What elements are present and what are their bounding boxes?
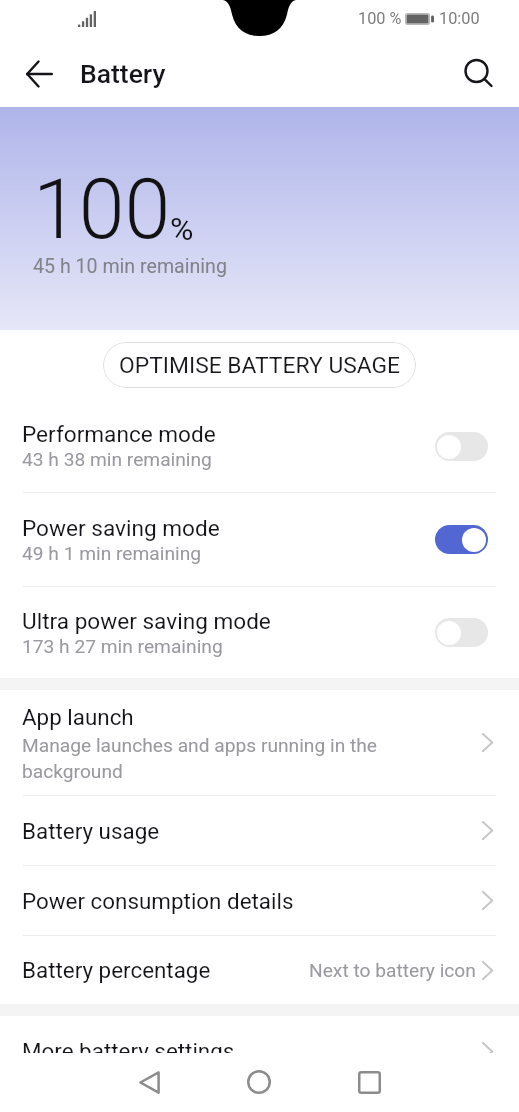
button[interactable]: Toggle <box>435 618 488 647</box>
staticText: Next to battery icon <box>309 959 476 982</box>
staticText: Performance mode <box>22 421 216 447</box>
button[interactable]: Power saving mode <box>0 493 519 586</box>
button[interactable]: Battery percentage <box>0 936 519 1004</box>
button[interactable]: Search <box>458 53 499 94</box>
staticText: 10:00 <box>439 9 480 28</box>
staticText: More battery settings <box>22 1038 235 1064</box>
staticText: 43 h 38 min remaining <box>22 448 212 471</box>
staticText: 173 h 27 min remaining <box>22 635 223 658</box>
button[interactable]: Recents <box>343 1056 395 1108</box>
staticText: 45 h 10 min remaining <box>33 255 227 278</box>
staticText: OPTIMISE BATTERY USAGE <box>119 352 401 379</box>
button[interactable]: App launch <box>0 690 519 795</box>
button[interactable]: Battery usage <box>0 796 519 865</box>
staticText: 49 h 1 min remaining <box>22 542 202 565</box>
staticText: Battery <box>80 58 166 89</box>
button[interactable]: Home <box>233 1056 285 1108</box>
staticText: Battery percentage <box>22 957 211 983</box>
staticText: Manage launches and apps running in the … <box>22 734 394 782</box>
button[interactable]: Power consumption details <box>0 866 519 935</box>
button[interactable]: Toggle <box>435 525 488 554</box>
button[interactable]: Back <box>19 53 60 94</box>
button[interactable]: Ultra power saving mode <box>0 587 519 678</box>
button[interactable]: More battery settings <box>0 1016 519 1086</box>
button[interactable]: Performance mode <box>0 400 519 492</box>
staticText: 100 % <box>358 9 402 28</box>
staticText: 100 <box>33 161 171 258</box>
staticText: Power consumption details <box>22 888 294 914</box>
button[interactable]: Back <box>123 1056 175 1108</box>
button[interactable]: Toggle <box>435 432 488 461</box>
staticText: % <box>170 210 194 248</box>
staticText: App launch <box>22 704 134 730</box>
staticText: Battery usage <box>22 818 160 844</box>
button[interactable]: OPTIMISE BATTERY USAGE <box>103 342 416 388</box>
staticText: Ultra power saving mode <box>22 608 271 634</box>
staticText: Power saving mode <box>22 515 220 541</box>
